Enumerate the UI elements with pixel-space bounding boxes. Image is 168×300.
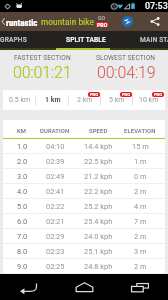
button[interactable]: 9.0: [3, 259, 165, 273]
staticText: 02:22: [46, 202, 65, 211]
staticText: ELEVATION: [124, 128, 156, 135]
staticText: 25.1 kph: [84, 247, 113, 256]
staticText: 2 m: [134, 232, 147, 241]
staticText: KM: [17, 128, 27, 135]
staticText: PRO: [90, 92, 98, 97]
button[interactable]: Back: [0, 274, 56, 300]
staticText: 25.2 kph: [84, 202, 113, 211]
staticText: 9.0: [17, 262, 28, 271]
staticText: 5.0: [17, 202, 28, 211]
staticText: 14.4 kph: [84, 142, 113, 151]
button[interactable]: GRAPHS: [0, 31, 40, 48]
button[interactable]: Home: [56, 274, 112, 300]
staticText: 00:01:21: [13, 63, 72, 82]
staticText: 2 km: [77, 96, 93, 104]
button[interactable]: Navigate up: [0, 12, 6, 31]
button[interactable]: 2 km: [69, 90, 101, 110]
staticText: 02:39: [46, 157, 65, 166]
staticText: 0 m: [134, 172, 147, 181]
staticText: 2 m: [134, 187, 147, 196]
staticText: 10 km: [139, 96, 159, 104]
staticText: 02:21: [46, 217, 65, 226]
staticText: SLOWEST SECTION: [96, 54, 156, 62]
button[interactable]: 6.0: [3, 214, 165, 228]
staticText: 1.0: [17, 142, 28, 151]
staticText: 02:23: [46, 247, 65, 256]
staticText: 0.5 km: [9, 96, 31, 104]
staticText: 02:49: [46, 172, 65, 181]
staticText: SPEED: [89, 128, 108, 135]
button[interactable]: 10 km: [133, 90, 165, 110]
button[interactable]: 2.0: [3, 154, 165, 168]
staticText: 02:41: [46, 187, 65, 196]
staticText: 00:04:19: [97, 63, 156, 82]
button[interactable]: MAIN STATS: [119, 31, 168, 48]
staticText: 1 m: [134, 157, 147, 166]
staticText: DURATION: [40, 128, 70, 135]
staticText: PRO: [97, 22, 108, 27]
button[interactable]: 5 km: [101, 90, 133, 110]
button[interactable]: Recent apps: [112, 274, 168, 300]
staticText: 2 m: [134, 262, 147, 271]
staticText: 7 m: [134, 217, 147, 226]
button[interactable]: 8.0: [3, 244, 165, 258]
staticText: 24.0 kph: [84, 232, 113, 241]
staticText: 4.0: [17, 187, 28, 196]
button[interactable]: 3.0: [3, 169, 165, 183]
staticText: runtastic: [6, 16, 38, 27]
staticText: 21.2 kph: [84, 172, 113, 181]
staticText: 4 m: [134, 202, 147, 211]
staticText: mountain bike: [41, 16, 94, 27]
staticText: 22.5 kph: [84, 157, 113, 166]
staticText: PRO: [122, 92, 130, 97]
button[interactable]: 0.5 km: [3, 90, 36, 110]
button[interactable]: Go Pro: [94, 12, 110, 31]
button[interactable]: SPLIT TABLE: [59, 31, 113, 48]
staticText: GO: [98, 15, 106, 21]
staticText: 7.0: [17, 232, 28, 241]
staticText: 07:53: [145, 1, 168, 12]
staticText: 04:10: [46, 142, 65, 151]
staticText: 02:29: [46, 232, 65, 241]
staticText: 22.2 kph: [84, 187, 113, 196]
staticText: FASTEST SECTION: [14, 54, 71, 62]
staticText: 25.4 kph: [84, 217, 113, 226]
staticText: 8.0: [17, 247, 28, 256]
button[interactable]: 5.0: [3, 199, 165, 213]
staticText: 3.0: [17, 172, 28, 181]
staticText: 1 km: [45, 96, 61, 104]
staticText: MAIN STATS: [140, 36, 168, 44]
staticText: 15 m: [132, 142, 149, 151]
staticText: 3 m: [134, 247, 147, 256]
staticText: 2.0: [17, 157, 28, 166]
staticText: PRO: [154, 92, 162, 97]
button[interactable]: 4.0: [3, 184, 165, 198]
button[interactable]: Share: [147, 12, 162, 31]
button[interactable]: Map: [120, 12, 135, 31]
button[interactable]: 1 km: [36, 90, 69, 110]
button[interactable]: 1.0: [3, 139, 165, 153]
staticText: 5 km: [109, 96, 125, 104]
button[interactable]: 7.0: [3, 229, 165, 243]
staticText: 6.0: [17, 217, 28, 226]
staticText: 02:25: [46, 262, 65, 271]
staticText: SPLIT TABLE: [66, 36, 106, 44]
staticText: 24.8 kph: [84, 262, 113, 271]
staticText: GRAPHS: [0, 36, 27, 44]
